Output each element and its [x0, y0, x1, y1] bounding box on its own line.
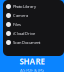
- staticText: Photo Library: [13, 4, 36, 9]
- staticText: iCloud Drive: [13, 31, 35, 36]
- staticText: AS PDF & JPG: [20, 68, 44, 72]
- staticText: SHARE: [19, 56, 44, 67]
- staticText: Scan Document: [13, 40, 40, 45]
- staticText: Camera: [13, 13, 28, 18]
- staticText: Files: [13, 22, 21, 27]
